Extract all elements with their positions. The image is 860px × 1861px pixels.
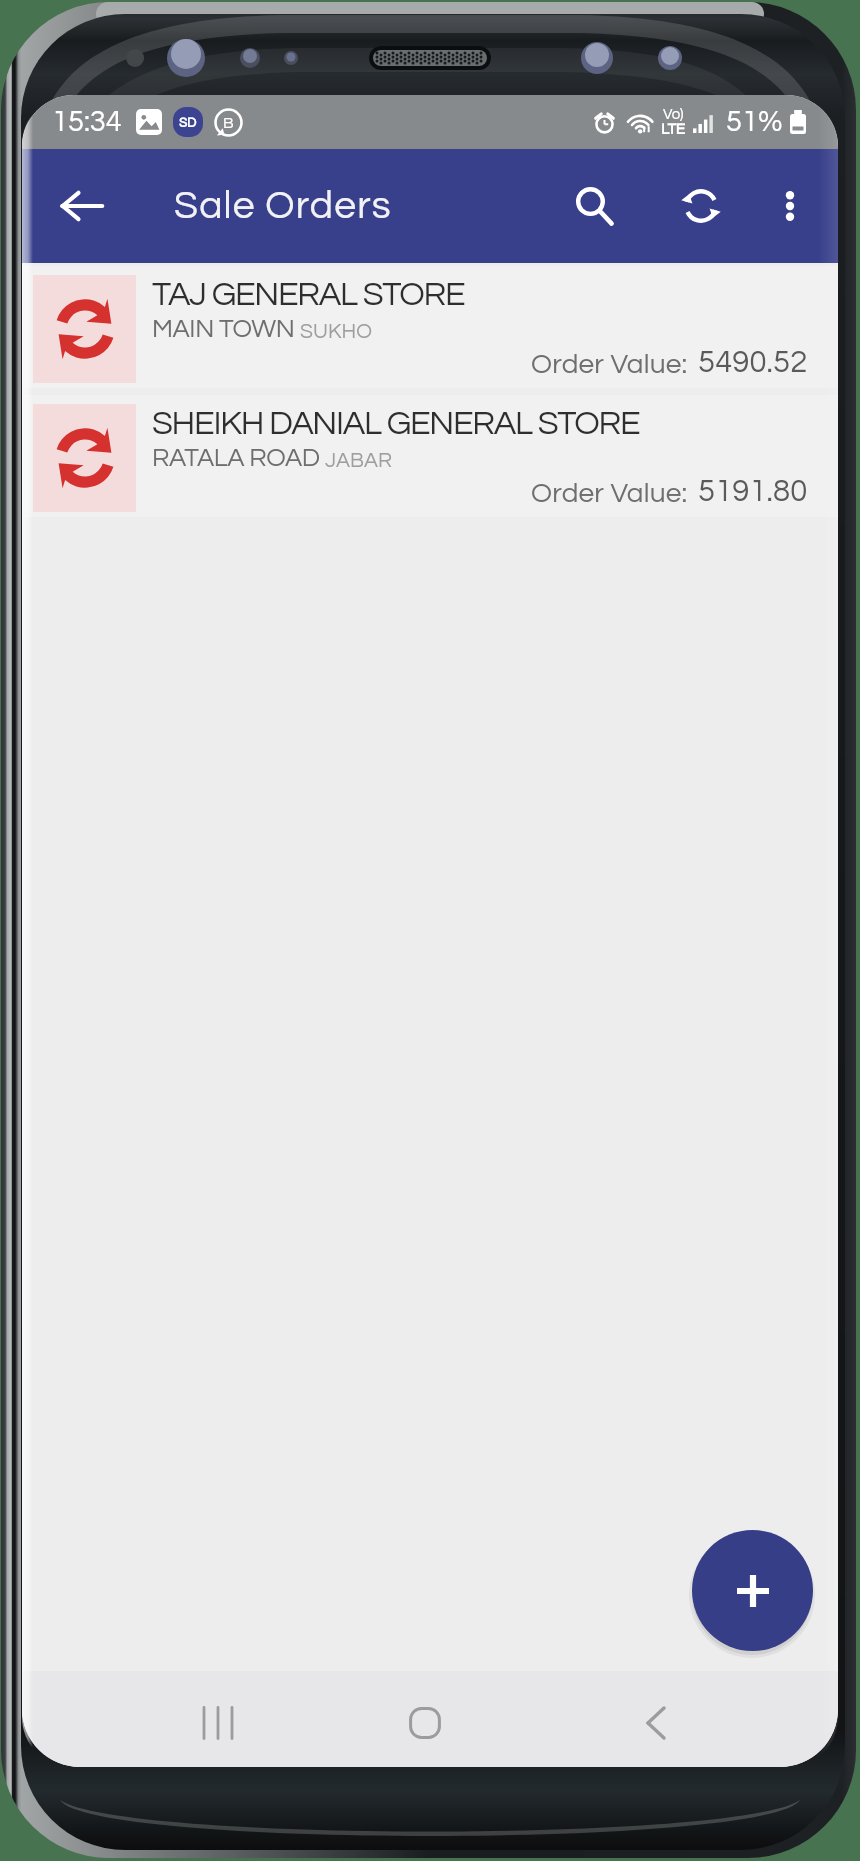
staticText: 5490.52 [698,347,808,379]
staticText: 51% [726,107,783,137]
staticText: B [223,115,234,131]
staticText: Order Value: [531,350,688,379]
staticText: Sale Orders [174,186,392,226]
staticText: 5191.80 [698,476,808,508]
staticText: RATALA ROAD [152,445,325,472]
staticText: TAJ GENERAL STORE [152,277,465,312]
button[interactable]: Search [555,167,633,245]
staticText: MAIN TOWN [152,316,300,343]
staticText: Order Value: [531,479,688,508]
button[interactable]: Sync [662,167,740,245]
button[interactable]: Back [608,1675,704,1767]
button[interactable]: Navigate up [48,172,116,240]
button[interactable]: Home [377,1675,473,1767]
staticText: SUKHO [300,321,373,343]
button[interactable]: Add new sale order [692,1530,813,1651]
staticText: JABAR [325,450,393,472]
staticText: Vo) [663,107,684,122]
button[interactable]: SHEIKH DANIAL GENERAL STORE [22,395,838,517]
staticText: 15:34 [52,107,122,137]
button[interactable]: Recent apps [169,1675,265,1767]
staticText: LTE [661,122,685,137]
button[interactable]: More options [755,171,825,241]
staticText: SD [179,116,197,129]
staticText: SHEIKH DANIAL GENERAL STORE [152,406,640,441]
button[interactable]: TAJ GENERAL STORE [22,266,838,388]
